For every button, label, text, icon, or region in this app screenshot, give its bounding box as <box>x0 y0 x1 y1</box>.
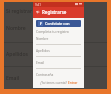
button[interactable]: Contraseña <box>36 73 81 77</box>
staticText: Si registrar <box>6 8 33 15</box>
button[interactable]: Apellidos <box>36 49 81 57</box>
staticText: Registrarse <box>42 9 67 15</box>
button[interactable]: Back <box>33 7 42 16</box>
staticText: ¿Ya tienes cuenta? <box>40 81 68 85</box>
staticText: f <box>40 21 42 26</box>
staticText: Nombre <box>36 37 49 41</box>
staticText: Apellidos <box>36 49 50 53</box>
button[interactable]: ¿Ya tienes cuenta? <box>38 80 80 86</box>
button[interactable]: Nombre <box>36 37 81 45</box>
staticText: Entrar <box>68 81 78 85</box>
staticText: Apellidos <box>6 51 28 58</box>
staticText: 9:41 <box>35 3 41 7</box>
button[interactable]: f <box>36 20 81 27</box>
staticText: Completa tu registro <box>36 29 69 34</box>
staticText: Email <box>36 61 45 65</box>
staticText: Nombre <box>6 25 26 32</box>
staticText: Email <box>6 75 20 82</box>
staticText: Conéctate con Facebook <box>45 21 79 26</box>
button[interactable]: Email <box>36 61 81 69</box>
staticText: Contraseña <box>36 73 54 77</box>
